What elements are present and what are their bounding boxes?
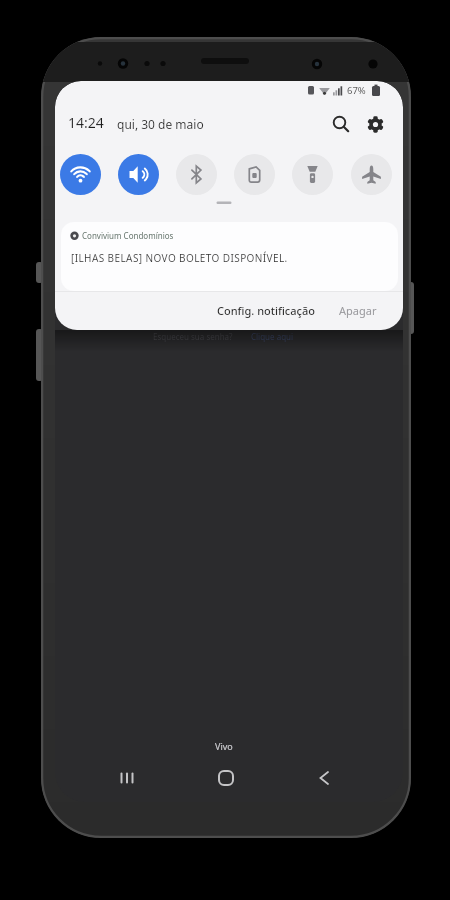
staticText: qui, 30 de maio — [117, 116, 204, 132]
staticText: 67% — [347, 84, 366, 97]
button[interactable]: Convivium Condomínios — [61, 222, 398, 291]
staticText: Esqueceu sua senha? — [153, 331, 235, 342]
button[interactable] — [60, 154, 101, 195]
button[interactable] — [118, 154, 159, 195]
button[interactable] — [103, 753, 151, 801]
staticText: Vivo — [215, 740, 233, 752]
button[interactable]: Apagar — [330, 296, 385, 328]
staticText: Convivium Condomínios — [82, 230, 174, 241]
button[interactable] — [292, 154, 333, 195]
staticText: Clique aqui — [251, 331, 294, 342]
staticText: Config. notificação — [217, 303, 315, 318]
staticText: 14:24 — [68, 113, 104, 132]
staticText: Apagar — [339, 303, 377, 318]
button[interactable] — [176, 154, 217, 195]
button[interactable] — [351, 154, 392, 195]
button[interactable] — [300, 753, 348, 801]
button[interactable] — [234, 154, 275, 195]
button[interactable] — [202, 753, 250, 801]
button[interactable]: Config. notificação — [207, 296, 320, 328]
staticText: [ILHAS BELAS] NOVO BOLETO DISPONÍVEL. — [71, 251, 288, 265]
